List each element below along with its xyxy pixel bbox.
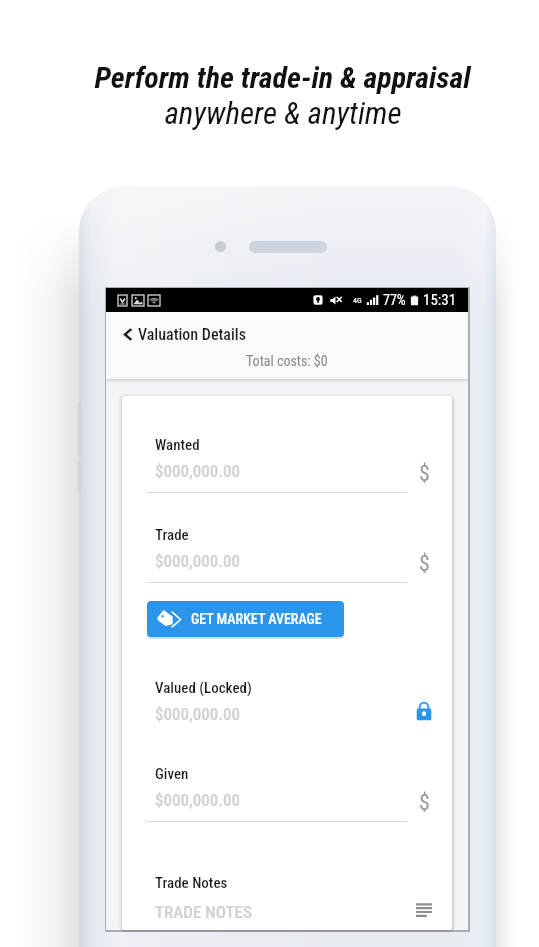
staticText: $000,000.00: [155, 461, 241, 481]
staticText: Given: [155, 765, 189, 783]
button[interactable]: Currency: [410, 550, 438, 578]
button[interactable]: Back: [106, 312, 468, 349]
other: Currency: [419, 461, 430, 487]
staticText: 4G: [353, 296, 362, 305]
staticText: $: [419, 790, 430, 816]
staticText: 15:31: [423, 291, 457, 309]
staticText: Trade Notes: [155, 874, 228, 892]
staticText: Valuation Details: [138, 325, 246, 344]
staticText: 77%: [383, 292, 406, 308]
button[interactable]: Notes: [410, 896, 438, 924]
staticText: Valued (Locked): [155, 679, 252, 697]
staticText: Trade: [155, 526, 189, 544]
button[interactable]: GET MARKET AVERAGE: [147, 601, 344, 637]
button[interactable]: Currency: [410, 789, 438, 817]
staticText: anywhere & anytime: [164, 95, 402, 131]
other: Currency: [419, 790, 430, 816]
staticText: TRADE NOTES: [155, 902, 252, 922]
staticText: $: [419, 551, 430, 577]
staticText: Perform the trade-in & appraisal: [94, 60, 471, 95]
staticText: GET MARKET AVERAGE: [191, 611, 322, 627]
other: Notes: [416, 903, 432, 917]
other: Currency: [419, 551, 430, 577]
staticText: $000,000.00: [155, 790, 241, 810]
staticText: $: [419, 461, 430, 487]
other: Locked field: [416, 701, 432, 721]
button[interactable]: Locked field: [410, 697, 438, 725]
staticText: $000,000.00: [155, 551, 241, 571]
button[interactable]: Currency: [410, 460, 438, 488]
staticText: Total costs: $0: [246, 353, 328, 369]
staticText: $000,000.00: [155, 704, 241, 724]
other: Back: [121, 328, 134, 341]
staticText: Wanted: [155, 436, 200, 454]
